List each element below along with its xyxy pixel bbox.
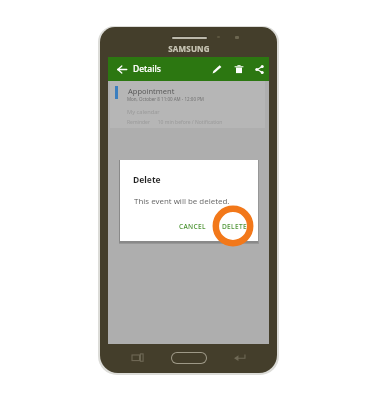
- button[interactable]: DELETE: [219, 219, 250, 234]
- staticText: This event will be deleted.: [134, 196, 230, 207]
- staticText: Mon, October 8 11:00 AM - 12:00 PM: [127, 96, 204, 102]
- button[interactable]: Home: [171, 352, 207, 364]
- button[interactable]: Recents: [129, 353, 144, 362]
- staticText: CANCEL: [179, 222, 206, 231]
- staticText: DELETE: [222, 222, 247, 231]
- staticText: SAMSUNG: [155, 43, 223, 54]
- staticText: Details: [133, 63, 161, 75]
- button[interactable]: CANCEL: [176, 219, 209, 234]
- button[interactable]: Edit: [206, 57, 227, 81]
- button[interactable]: Navigate up: [111, 57, 132, 81]
- button[interactable]: Appointment: [110, 81, 265, 128]
- button[interactable]: Share: [249, 57, 269, 81]
- staticText: My calendar: [127, 108, 160, 116]
- button[interactable]: Back: [233, 353, 246, 362]
- button[interactable]: Delete: [228, 57, 249, 81]
- staticText: Appointment: [128, 86, 175, 96]
- staticText: Delete: [133, 174, 161, 186]
- staticText: Reminder 10 min before / Notification: [127, 119, 223, 126]
